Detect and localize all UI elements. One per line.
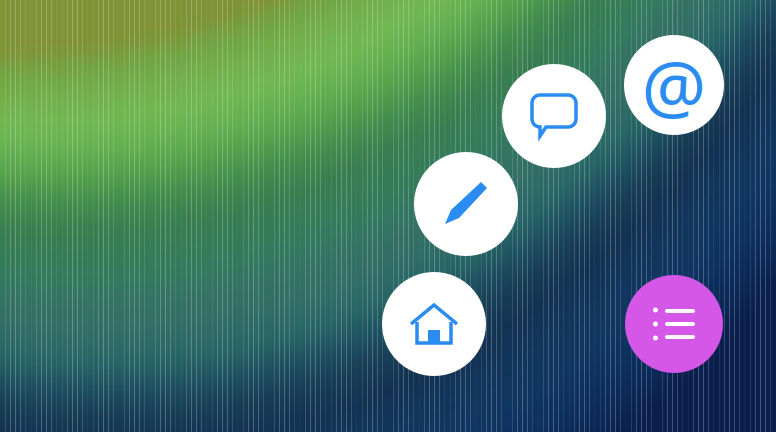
button[interactable]: Messages xyxy=(502,64,606,168)
button[interactable]: Home xyxy=(382,272,486,376)
button[interactable]: Notes xyxy=(414,152,518,256)
staticText: @ xyxy=(641,37,706,133)
button[interactable]: Reminders xyxy=(625,275,723,373)
button[interactable]: Mail xyxy=(624,35,724,135)
